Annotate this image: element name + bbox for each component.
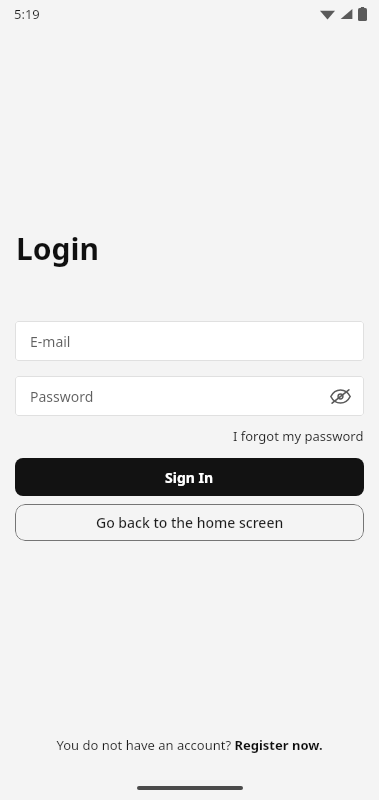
staticText: Sign In bbox=[165, 468, 214, 487]
staticText: I forgot my password bbox=[233, 427, 364, 445]
button[interactable]: I forgot my password bbox=[218, 425, 379, 447]
staticText: 5:19 bbox=[14, 5, 40, 23]
button[interactable]: You do not have an account? Register now… bbox=[0, 730, 379, 760]
button[interactable]: Go back to the home screen bbox=[15, 504, 364, 541]
staticText: Login bbox=[16, 228, 99, 269]
staticText: Go back to the home screen bbox=[96, 513, 284, 532]
button[interactable]: Password bbox=[15, 376, 364, 416]
staticText: You do not have an account? Register now… bbox=[56, 736, 323, 754]
staticText: Password bbox=[30, 387, 94, 406]
button[interactable]: Sign In bbox=[15, 458, 364, 496]
staticText: E-mail bbox=[30, 332, 71, 351]
button[interactable]: E-mail bbox=[15, 321, 364, 361]
button[interactable]: Show password bbox=[326, 382, 354, 410]
